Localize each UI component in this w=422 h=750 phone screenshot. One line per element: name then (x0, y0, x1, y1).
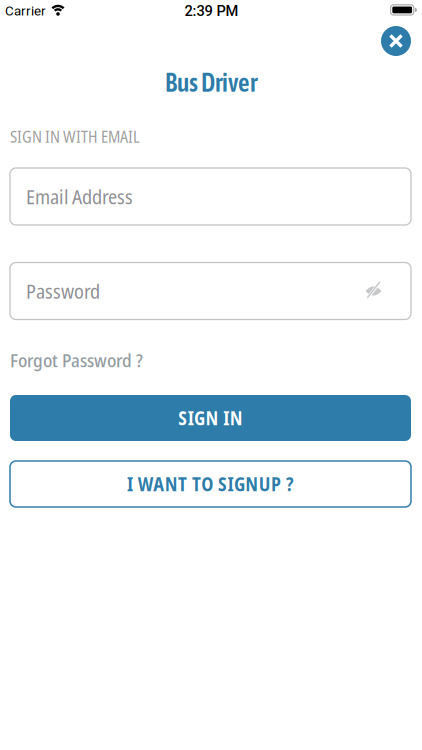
staticText: SIGN IN WITH EMAIL (10, 126, 140, 147)
button[interactable]: Forgot Password ? (10, 347, 143, 373)
staticText: Bus Driver (165, 68, 257, 97)
staticText: 2:39 PM (184, 2, 238, 20)
staticText: SIGN IN (178, 405, 243, 431)
staticText: I WANT TO SIGNUP ? (127, 471, 294, 497)
staticText: Forgot Password ? (10, 347, 143, 373)
button[interactable]: I WANT TO SIGNUP ? (10, 461, 411, 507)
button[interactable]: Close (381, 26, 411, 56)
staticText: Password (26, 277, 100, 305)
staticText: Email Address (26, 183, 133, 210)
staticText: Carrier (5, 3, 46, 19)
button[interactable]: Show password (364, 281, 382, 299)
button[interactable]: SIGN IN (10, 395, 411, 441)
